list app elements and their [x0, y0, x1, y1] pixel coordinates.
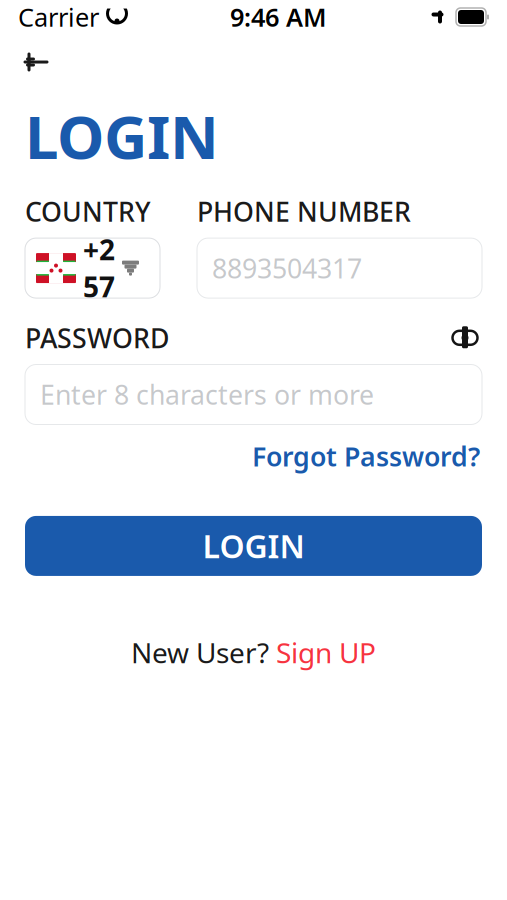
staticText: Forgot Password?	[252, 438, 480, 474]
button[interactable]: Enter 8 characters or more	[25, 364, 482, 424]
button[interactable]: 8893504317	[197, 238, 482, 298]
button[interactable]: Sign UP	[276, 634, 376, 671]
button[interactable]: Show password	[448, 325, 482, 351]
staticText: Carrier	[18, 0, 99, 34]
button[interactable]: Select country code, Burundi plus 257	[25, 238, 160, 298]
staticText: LOGIN	[25, 96, 219, 176]
staticText: New User?	[131, 634, 276, 671]
staticText: COUNTRY	[25, 194, 151, 229]
staticText: PASSWORD	[25, 320, 169, 355]
staticText: PHONE NUMBER	[197, 194, 411, 229]
staticText: +257	[83, 231, 115, 305]
staticText: 9:46 AM	[230, 0, 327, 34]
staticText: 8893504317	[212, 250, 362, 286]
button[interactable]: Back	[14, 40, 58, 84]
button[interactable]: LOGIN	[25, 516, 482, 576]
staticText: Enter 8 characters or more	[40, 377, 374, 412]
staticText: Sign UP	[276, 634, 376, 671]
staticText: LOGIN	[202, 525, 304, 567]
button[interactable]: Forgot Password?	[252, 438, 480, 474]
